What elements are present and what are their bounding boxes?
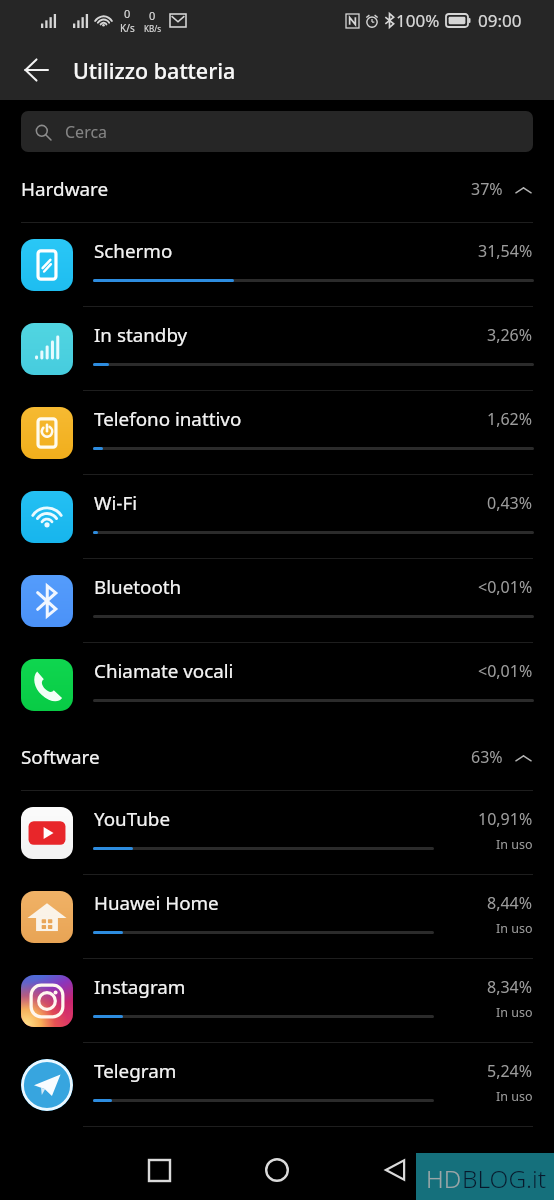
staticText: Wi-Fi xyxy=(94,490,137,516)
staticText: <0,01% xyxy=(478,660,533,682)
button[interactable]: In standby xyxy=(0,307,554,391)
button[interactable]: Cerca xyxy=(21,111,533,152)
staticText: Cerca xyxy=(65,121,108,143)
staticText: In uso xyxy=(496,1088,533,1105)
button[interactable]: Huawei Home xyxy=(0,875,554,959)
button[interactable]: Telegram xyxy=(0,1043,554,1127)
staticText: 63% xyxy=(471,746,503,768)
button[interactable]: Chiamate vocali xyxy=(0,643,554,727)
button[interactable]: Back xyxy=(371,1146,419,1194)
button[interactable]: Telefono inattivo xyxy=(0,391,554,475)
staticText: Bluetooth xyxy=(94,574,182,600)
staticText: Hardware xyxy=(21,176,109,202)
button[interactable]: Home xyxy=(253,1146,301,1194)
staticText: Software xyxy=(21,744,100,770)
staticText: 31,54% xyxy=(478,240,533,262)
staticText: 0 xyxy=(149,8,156,23)
staticText: 0,43% xyxy=(487,492,533,514)
staticText: In uso xyxy=(496,920,533,937)
button[interactable]: Wi-Fi xyxy=(0,475,554,559)
staticText: 09:00 xyxy=(478,9,522,32)
staticText: 10,91% xyxy=(478,808,533,830)
staticText: Telegram xyxy=(94,1058,177,1084)
staticText: 1,62% xyxy=(487,408,533,430)
button[interactable]: Software xyxy=(0,727,554,790)
staticText: YouTube xyxy=(94,806,170,832)
staticText: KB/s xyxy=(144,23,161,34)
button[interactable]: Recents xyxy=(135,1146,183,1194)
staticText: Schermo xyxy=(94,238,173,264)
button[interactable]: Bluetooth xyxy=(0,559,554,643)
staticText: Telefono inattivo xyxy=(94,406,242,432)
staticText: K/s xyxy=(120,21,135,35)
staticText: 8,44% xyxy=(487,892,533,914)
button[interactable]: YouTube xyxy=(0,791,554,875)
staticText: 8,34% xyxy=(487,976,533,998)
staticText: 3,26% xyxy=(487,324,533,346)
staticText: 37% xyxy=(471,178,503,200)
staticText: In uso xyxy=(496,836,533,853)
staticText: In standby xyxy=(94,322,188,348)
staticText: Chiamate vocali xyxy=(94,658,234,684)
staticText: <0,01% xyxy=(478,576,533,598)
staticText: Utilizzo batteria xyxy=(73,56,236,85)
staticText: HD xyxy=(426,1162,462,1195)
button[interactable]: Schermo xyxy=(0,223,554,307)
button[interactable]: Hardware xyxy=(0,152,554,222)
staticText: BLOG.it xyxy=(462,1162,547,1195)
staticText: Instagram xyxy=(94,974,186,1000)
staticText: 0 xyxy=(124,6,131,21)
staticText: Huawei Home xyxy=(94,890,219,916)
staticText: In uso xyxy=(496,1004,533,1021)
button[interactable]: Instagram xyxy=(0,959,554,1043)
button[interactable]: Back xyxy=(13,47,59,93)
staticText: 100% xyxy=(396,9,440,32)
staticText: 5,24% xyxy=(487,1060,533,1082)
